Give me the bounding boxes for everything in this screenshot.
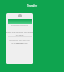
staticText: Enter the amount you want to send — [6, 31, 33, 37]
staticText: in a few minutes — [6, 42, 33, 45]
staticText: Transfer — [0, 4, 64, 8]
button[interactable] — [8, 19, 32, 24]
staticText: available balance — [6, 24, 33, 27]
staticText: Recipient will get the money — [6, 39, 33, 45]
